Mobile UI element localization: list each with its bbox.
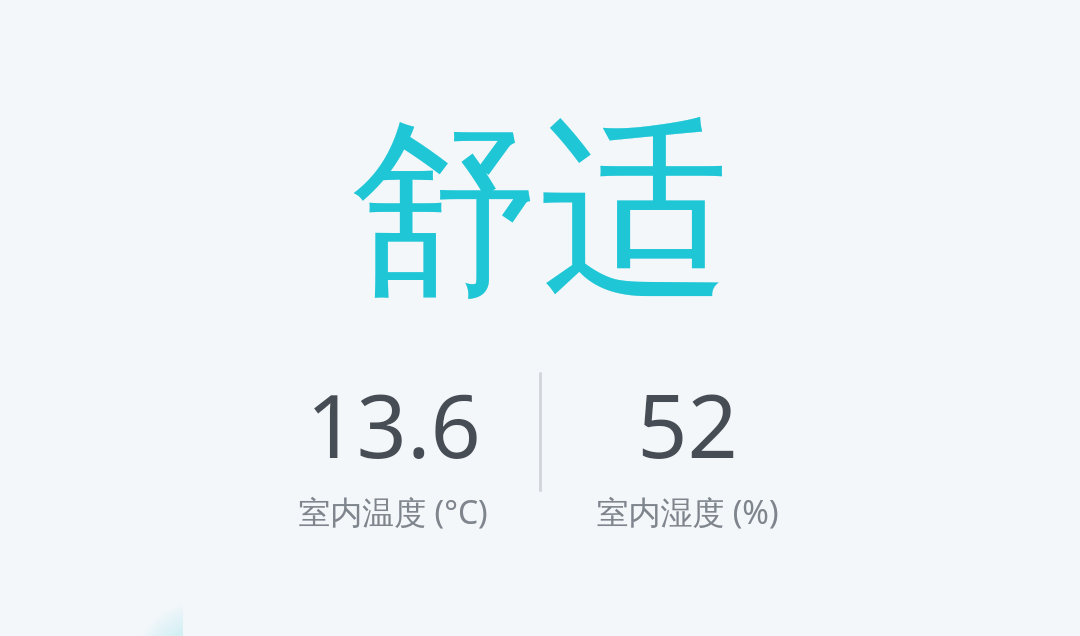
staticText: 室内温度 (°C): [298, 490, 488, 534]
staticText: 室内湿度 (%): [596, 490, 779, 534]
staticText: 舒适: [350, 92, 730, 331]
button[interactable]: 室内温度 (°C): [250, 364, 536, 534]
staticText: 13.6: [306, 364, 481, 484]
staticText: 52: [637, 364, 738, 484]
button[interactable]: 室内湿度 (%): [544, 364, 830, 534]
button[interactable]: 舒适: [342, 92, 738, 331]
